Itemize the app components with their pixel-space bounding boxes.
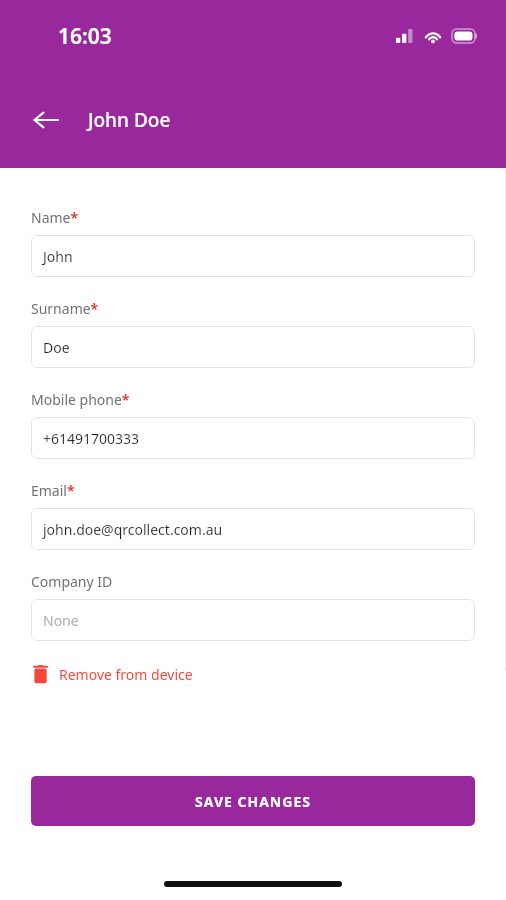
- staticText: SAVE CHANGES: [195, 792, 311, 811]
- button[interactable]: None: [31, 599, 475, 641]
- staticText: 16:03: [58, 22, 112, 51]
- staticText: Remove from device: [59, 665, 193, 684]
- staticText: Doe: [43, 338, 70, 357]
- staticText: None: [43, 611, 79, 630]
- staticText: John Doe: [88, 107, 171, 133]
- button[interactable]: +61491700333: [31, 417, 475, 459]
- staticText: john.doe@qrcollect.com.au: [43, 520, 223, 539]
- staticText: +61491700333: [43, 429, 140, 448]
- button[interactable]: Remove from device: [31, 659, 195, 690]
- staticText: Name*: [31, 208, 79, 227]
- button[interactable]: john.doe@qrcollect.com.au: [31, 508, 475, 550]
- staticText: John: [43, 247, 73, 266]
- button[interactable]: Doe: [31, 326, 475, 368]
- button[interactable]: John: [31, 235, 475, 277]
- staticText: Mobile phone*: [31, 390, 130, 409]
- button[interactable]: SAVE CHANGES: [31, 776, 475, 826]
- button[interactable]: Back: [22, 96, 70, 144]
- staticText: Surname*: [31, 299, 99, 318]
- staticText: Email*: [31, 481, 75, 500]
- staticText: Company ID: [31, 572, 113, 591]
